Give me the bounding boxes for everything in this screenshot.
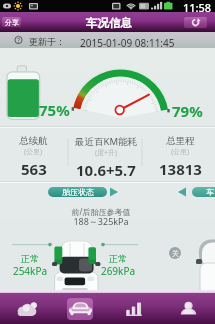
staticText: 更新于： — [29, 36, 65, 47]
staticText: 11:58 — [183, 0, 212, 12]
staticText: 188～325kPa — [45, 215, 157, 227]
staticText: 胎压状态 — [62, 187, 94, 197]
staticText: 总里程 — [166, 135, 195, 147]
button[interactable]: 总里程 — [134, 126, 215, 183]
staticText: 车况信息 — [86, 16, 132, 30]
staticText: 正常 — [10, 253, 50, 264]
staticText: 关 — [172, 249, 179, 258]
button[interactable]: Refresh — [184, 17, 207, 28]
staticText: 10.6+5.7 — [76, 160, 136, 180]
button[interactable]: 总续航 — [0, 126, 79, 183]
staticText: 269kPa — [98, 264, 138, 278]
staticText: 分享 — [5, 18, 19, 27]
staticText: 13813 — [159, 159, 202, 179]
staticText: 前/后胎压参考值 — [45, 206, 157, 217]
button[interactable]: Previous page — [178, 187, 186, 197]
button[interactable]: Statistics — [107, 293, 161, 324]
staticText: 79% — [172, 101, 203, 121]
button[interactable]: 车窗天窗 — [192, 187, 215, 197]
staticText: 75% — [39, 100, 70, 120]
staticText: 最近百KM能耗 — [75, 135, 137, 148]
button[interactable]: 最近百KM能耗 — [60, 126, 152, 183]
staticText: (度+升) — [95, 148, 118, 158]
staticText: 563 — [21, 159, 47, 179]
staticText: ? — [17, 36, 21, 46]
staticText: 车窗天窗 — [206, 187, 215, 197]
staticText: 正常 — [98, 253, 138, 264]
staticText: 254kPa — [10, 264, 50, 278]
staticText: (公里) — [171, 147, 190, 157]
staticText: 总续航 — [19, 135, 48, 147]
staticText: 2015-01-09 08:11:45 — [80, 36, 175, 50]
button[interactable]: Weather — [0, 293, 53, 324]
button[interactable]: Off — [169, 247, 181, 259]
button[interactable]: 胎压状态 — [48, 187, 107, 197]
button[interactable]: Next page — [110, 187, 118, 197]
button[interactable]: Vehicle — [53, 293, 107, 324]
button[interactable]: Profile — [161, 293, 215, 324]
button[interactable]: 分享 — [2, 17, 21, 27]
staticText: (公里) — [24, 147, 43, 157]
